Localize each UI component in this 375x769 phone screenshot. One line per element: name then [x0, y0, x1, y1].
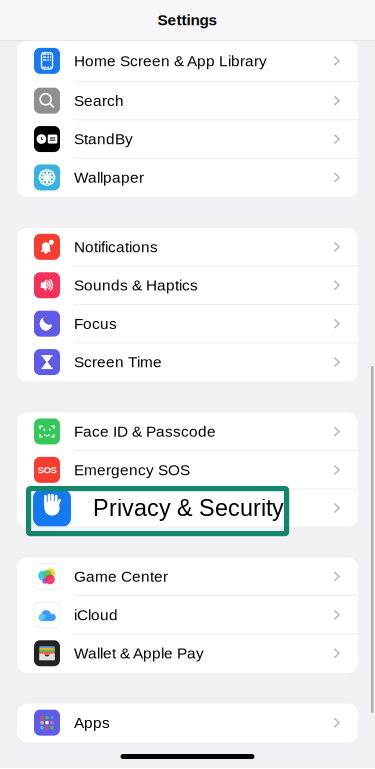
staticText: Settings — [157, 11, 217, 28]
staticText: iCloud — [74, 606, 118, 623]
button[interactable]: Home Screen & App Library — [17, 41, 358, 82]
staticText: Focus — [74, 315, 117, 332]
button[interactable]: Game Center — [17, 558, 358, 596]
staticText: Sounds & Haptics — [74, 277, 198, 294]
staticText: Wallpaper — [74, 169, 144, 186]
staticText: Game Center — [74, 568, 168, 585]
button[interactable]: SOS — [17, 451, 358, 489]
button[interactable]: Focus — [17, 305, 358, 343]
button[interactable]: Notifications — [17, 228, 358, 266]
button[interactable]: StandBy — [17, 120, 358, 159]
button[interactable]: iCloud — [17, 596, 358, 634]
staticText: Home Screen & App Library — [74, 52, 267, 69]
staticText: SOS — [37, 464, 56, 475]
staticText: Emergency SOS — [74, 461, 190, 478]
button[interactable]: Sounds & Haptics — [17, 266, 358, 305]
button[interactable]: Privacy & Security — [17, 489, 358, 527]
button[interactable]: Face ID & Passcode — [17, 413, 358, 451]
button[interactable]: Screen Time — [17, 343, 358, 382]
staticText: Apps — [74, 714, 110, 731]
staticText: Wallet & Apple Pay — [74, 645, 204, 662]
staticText: Face ID & Passcode — [74, 423, 216, 440]
button[interactable]: Wallpaper — [17, 159, 358, 197]
staticText: StandBy — [74, 130, 133, 148]
staticText: Notifications — [74, 238, 158, 255]
button[interactable]: Search — [17, 82, 358, 120]
staticText: Screen Time — [74, 353, 162, 371]
button[interactable]: Apps — [17, 704, 358, 742]
staticText: Search — [74, 92, 124, 109]
staticText: Privacy & Security — [93, 495, 284, 521]
button[interactable]: Wallet & Apple Pay — [17, 634, 358, 673]
